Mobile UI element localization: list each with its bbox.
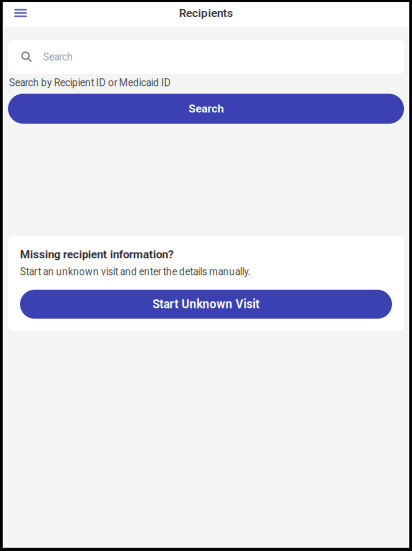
staticText: Search: [188, 102, 223, 115]
button[interactable]: Search: [8, 94, 404, 124]
staticText: Start Unknown Visit: [152, 297, 259, 311]
staticText: Start an unknown visit and enter the det…: [20, 266, 251, 278]
button[interactable]: Start Unknown Visit: [20, 290, 392, 319]
staticText: Missing recipient information?: [20, 248, 174, 261]
button[interactable]: Menu: [7, 3, 34, 25]
staticText: Search by Recipient ID or Medicaid ID: [9, 77, 171, 89]
staticText: Search: [43, 51, 73, 63]
staticText: Recipients: [179, 6, 233, 20]
